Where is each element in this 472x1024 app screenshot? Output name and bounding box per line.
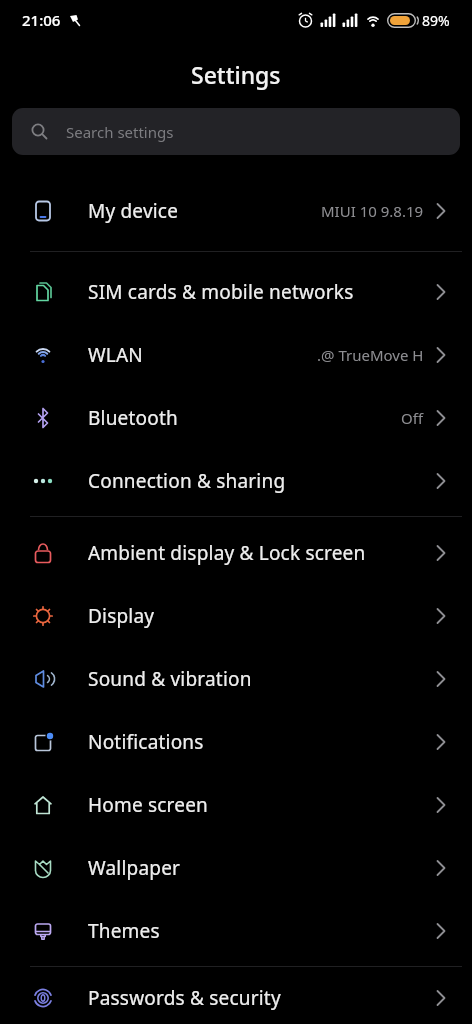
button[interactable]: My device [0,179,472,242]
staticText: SIM cards & mobile networks [88,279,354,305]
button[interactable]: Home screen [0,773,472,836]
staticText: Bluetooth [88,405,178,431]
button[interactable]: Ambient display & Lock screen [0,521,472,584]
button[interactable]: WLAN [0,323,472,386]
staticText: Off [401,408,424,428]
button[interactable]: Search settings [12,108,460,155]
staticText: My device [88,198,179,224]
staticText: MIUI 10 9.8.19 [321,201,424,221]
staticText: Search settings [66,122,174,142]
button[interactable]: Connection & sharing [0,449,472,512]
button[interactable]: Passwords & security [0,971,472,1024]
staticText: Passwords & security [88,985,281,1011]
staticText: Display [88,603,155,629]
staticText: 21:06 [22,10,61,30]
staticText: WLAN [88,342,144,368]
staticText: Sound & vibration [88,666,252,692]
staticText: Home screen [88,792,209,818]
button[interactable]: SIM cards & mobile networks [0,260,472,323]
staticText: Ambient display & Lock screen [88,540,366,566]
button[interactable]: Notifications [0,710,472,773]
staticText: Themes [88,918,160,944]
staticText: Wallpaper [88,855,181,881]
staticText: .@ TrueMove H [317,345,424,365]
staticText: Settings [191,59,281,90]
button[interactable]: Sound & vibration [0,647,472,710]
button[interactable]: Bluetooth [0,386,472,449]
button[interactable]: Display [0,584,472,647]
button[interactable]: Themes [0,899,472,962]
staticText: Notifications [88,729,204,755]
button[interactable]: Wallpaper [0,836,472,899]
staticText: Connection & sharing [88,468,286,494]
staticText: 89% [422,11,450,30]
